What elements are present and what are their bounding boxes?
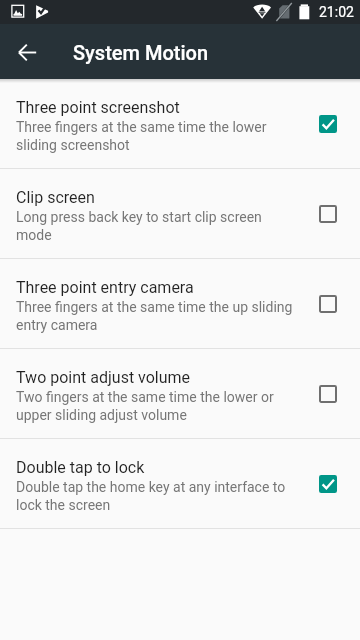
staticText: Clip screen [16,188,95,207]
button[interactable]: Double tap to lock [0,439,360,529]
staticText: Double tap the home key at any interface… [16,479,296,513]
button[interactable]: Three point entry camera [0,259,360,349]
button[interactable]: Clip screen [0,169,360,259]
staticText: Three fingers at the same time the up sl… [16,299,296,333]
staticText: Two point adjust volume [16,368,191,387]
staticText: 21:02 [319,4,354,20]
staticText: Three point screenshot [16,98,180,117]
staticText: Three fingers at the same time the lower… [16,119,296,153]
button[interactable]: Navigate up [0,25,54,79]
button[interactable]: Three point screenshot [0,79,360,169]
staticText: System Motion [73,41,209,64]
button[interactable]: Two point adjust volume [0,349,360,439]
staticText: Long press back key to start clip screen… [16,209,296,243]
staticText: Double tap to lock [16,458,145,477]
staticText: Two fingers at the same time the lower o… [16,389,296,423]
staticText: Three point entry camera [16,278,194,297]
